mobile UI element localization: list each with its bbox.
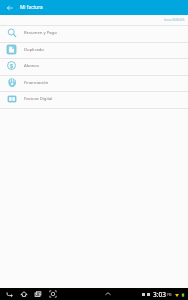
button[interactable]: Screenshot — [47, 288, 59, 300]
staticText: $ — [10, 62, 14, 70]
staticText: Resumen y Pago — [24, 30, 57, 36]
button[interactable]: Resumen y Pago — [0, 25, 188, 42]
staticText: PM — [167, 293, 172, 297]
staticText: Factura Digital — [24, 96, 53, 102]
button[interactable]: Recents — [32, 288, 44, 300]
button[interactable]: Back — [4, 288, 16, 300]
button[interactable]: $ — [0, 58, 188, 75]
button[interactable]: Financiación — [0, 75, 188, 92]
staticText: Financiación — [24, 80, 49, 86]
button[interactable]: Show notifications — [102, 288, 114, 300]
staticText: Duplicado — [24, 47, 44, 53]
button[interactable]: Factura Digital — [0, 91, 188, 108]
staticText: Abonos — [24, 63, 39, 69]
button[interactable]: Home — [18, 288, 30, 300]
staticText: Linea 3626455 — [164, 18, 185, 22]
staticText: Mi factura — [20, 4, 43, 11]
button[interactable]: Back — [0, 0, 20, 15]
button[interactable]: Duplicado — [0, 42, 188, 59]
staticText: 3:03 — [153, 290, 166, 299]
